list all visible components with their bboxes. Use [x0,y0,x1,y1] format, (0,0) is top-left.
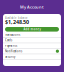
staticText: My Account [20,4,44,10]
staticText: Payments [5,44,17,47]
staticText: Cards [5,38,12,42]
staticText: Transactions [5,33,20,36]
button[interactable]: Transactions [3,32,61,38]
staticText: $1,248.50 [5,18,29,26]
button[interactable]: Add money [5,27,59,32]
button[interactable]: Notifications [3,49,61,54]
button[interactable]: Security [3,54,61,60]
staticText: Available balance [5,16,28,20]
staticText: Add money [23,27,40,31]
button[interactable]: Payments [3,43,61,49]
staticText: Security [5,55,15,58]
staticText: Notifications [5,49,22,53]
button[interactable]: Cards [3,38,61,43]
